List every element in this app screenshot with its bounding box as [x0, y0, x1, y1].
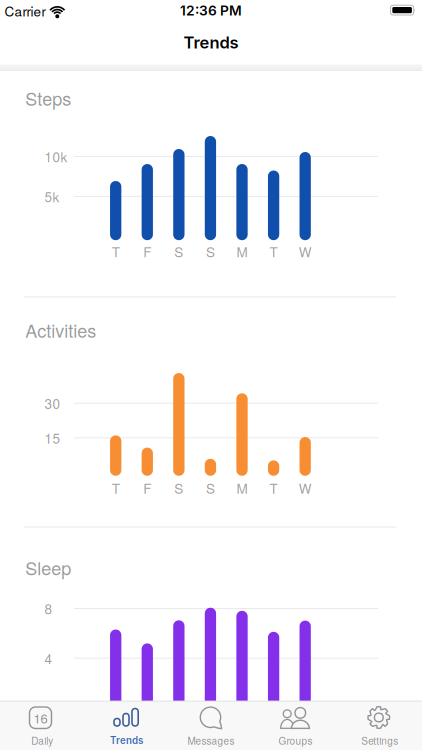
staticText: 8 — [44, 599, 52, 618]
staticText: S — [174, 242, 183, 261]
staticText: W — [299, 478, 312, 498]
staticText: M — [236, 242, 247, 261]
staticText: Daily — [31, 733, 53, 748]
staticText: T — [270, 478, 278, 498]
staticText: Settings — [361, 733, 398, 748]
staticText: T — [270, 242, 278, 261]
button[interactable]: Settings — [338, 701, 422, 750]
button[interactable]: Trends — [84, 701, 169, 750]
staticText: Groups — [278, 733, 312, 748]
staticText: 5k — [44, 187, 59, 206]
staticText: Trends — [110, 735, 143, 746]
staticText: T — [112, 242, 120, 261]
staticText: S — [206, 478, 215, 498]
staticText: Activities — [25, 317, 96, 343]
staticText: T — [112, 478, 120, 498]
staticText: Messages — [187, 733, 234, 748]
staticText: Carrier — [4, 1, 45, 20]
staticText: 15 — [44, 428, 60, 447]
staticText: F — [143, 242, 151, 261]
staticText: S — [174, 478, 183, 498]
staticText: 10k — [44, 147, 67, 166]
staticText: 30 — [44, 393, 60, 413]
staticText: W — [299, 242, 312, 261]
staticText: Sleep — [25, 555, 71, 580]
button[interactable]: Messages — [169, 701, 253, 750]
staticText: 4 — [44, 648, 52, 668]
button[interactable]: Groups — [253, 701, 338, 750]
staticText: M — [236, 478, 247, 498]
button[interactable]: 16 — [0, 701, 84, 750]
staticText: F — [143, 478, 151, 498]
staticText: Trends — [183, 32, 238, 52]
staticText: Steps — [25, 85, 71, 111]
staticText: 12:36 PM — [180, 2, 242, 19]
staticText: S — [206, 242, 215, 261]
staticText: 16 — [33, 708, 47, 727]
